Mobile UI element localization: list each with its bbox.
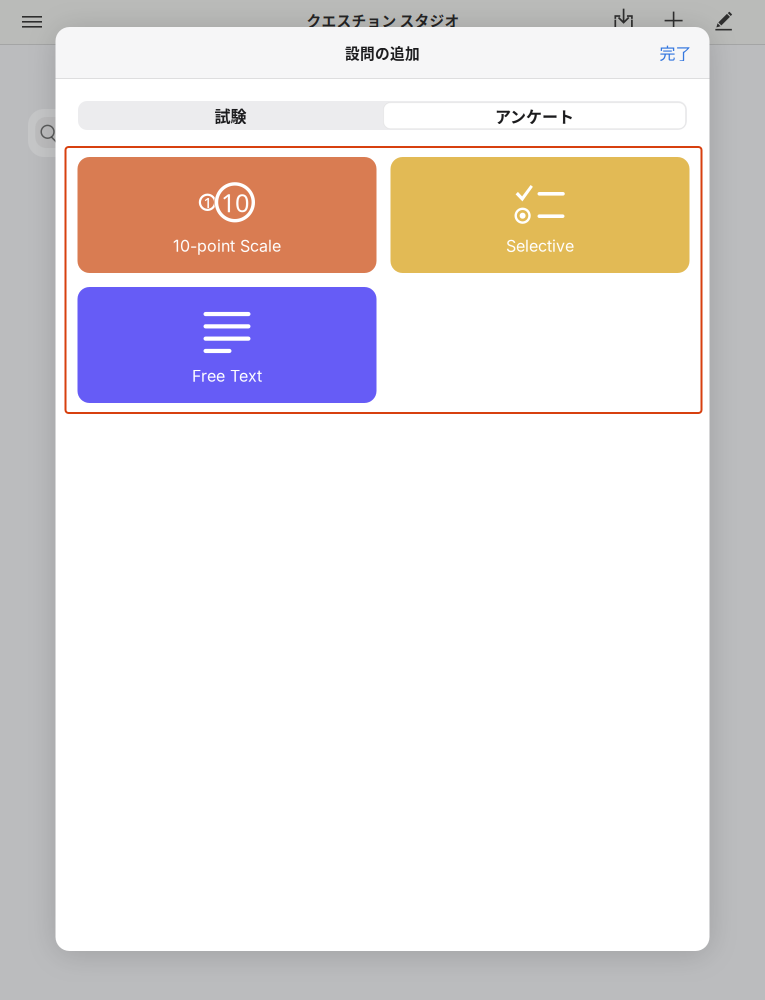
staticText: アンケート <box>495 104 574 127</box>
button[interactable]: Menu <box>10 0 54 43</box>
staticText: 10 <box>221 185 249 219</box>
staticText: 設問の追加 <box>345 42 420 63</box>
staticText: 試験 <box>214 104 246 127</box>
staticText: 10-point Scale <box>173 236 281 256</box>
button[interactable]: Selective <box>390 157 689 273</box>
button[interactable]: Free Text <box>77 287 376 403</box>
button[interactable]: 1 <box>77 157 376 273</box>
staticText: Selective <box>506 236 574 256</box>
button[interactable]: 試験 <box>78 101 383 130</box>
staticText: 1 <box>203 193 211 212</box>
button[interactable]: アンケート <box>384 103 686 129</box>
button[interactable]: 完了 <box>647 33 703 72</box>
staticText: クエスチョン スタジオ <box>306 9 459 31</box>
staticText: 完了 <box>659 41 691 64</box>
button[interactable]: Save <box>607 2 641 36</box>
button[interactable]: Edit <box>707 3 741 37</box>
button[interactable]: Add <box>657 4 691 38</box>
staticText: Free Text <box>192 366 262 386</box>
